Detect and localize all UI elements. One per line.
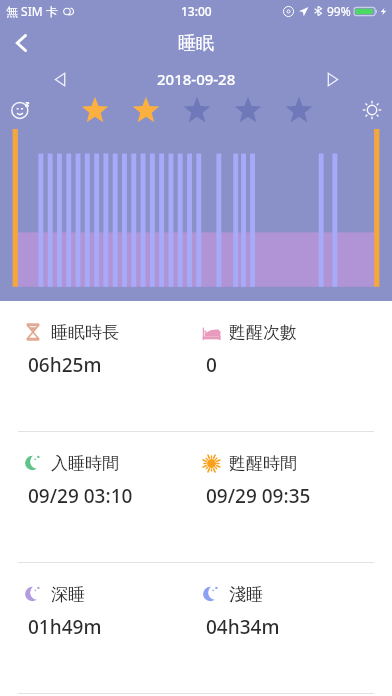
- staticText: 入睡時間: [51, 453, 119, 474]
- staticText: 淺睡: [229, 584, 263, 605]
- button[interactable]: Rate 4 stars: [222, 94, 273, 126]
- button[interactable]: Back: [0, 22, 44, 64]
- button[interactable]: Rate 5 stars: [273, 94, 324, 126]
- button[interactable]: Rate 3 stars: [171, 94, 222, 126]
- staticText: 0: [206, 352, 217, 378]
- staticText: 甦醒時間: [229, 453, 297, 474]
- button[interactable]: Previous day: [46, 65, 74, 93]
- staticText: 09/29 03:10: [28, 483, 133, 509]
- staticText: 13:00: [181, 3, 212, 19]
- button[interactable]: 入睡時間: [0, 432, 196, 562]
- button[interactable]: Rate 2 stars: [120, 94, 171, 126]
- staticText: 99%: [327, 3, 351, 19]
- other: Sleep quality low: [9, 98, 33, 122]
- staticText: 09/29 09:35: [206, 483, 311, 509]
- staticText: 睡眠: [178, 32, 214, 55]
- staticText: 04h34m: [206, 614, 280, 640]
- other: Sleep quality high: [360, 98, 384, 122]
- button[interactable]: Rate 1 stars: [69, 94, 120, 126]
- button[interactable]: 淺睡: [196, 563, 392, 693]
- button[interactable]: Next day: [318, 65, 346, 93]
- staticText: 睡眠時長: [51, 322, 119, 343]
- button[interactable]: 睡眠時長: [0, 301, 196, 431]
- button[interactable]: 甦醒次數: [196, 301, 392, 431]
- button[interactable]: 深睡: [0, 563, 196, 693]
- staticText: 深睡: [51, 584, 85, 605]
- staticText: 無 SIM 卡: [6, 3, 58, 19]
- staticText: 2018-09-28: [157, 69, 236, 89]
- staticText: 甦醒次數: [229, 322, 297, 343]
- button[interactable]: 甦醒時間: [196, 432, 392, 562]
- staticText: 01h49m: [28, 614, 102, 640]
- staticText: 06h25m: [28, 352, 102, 378]
